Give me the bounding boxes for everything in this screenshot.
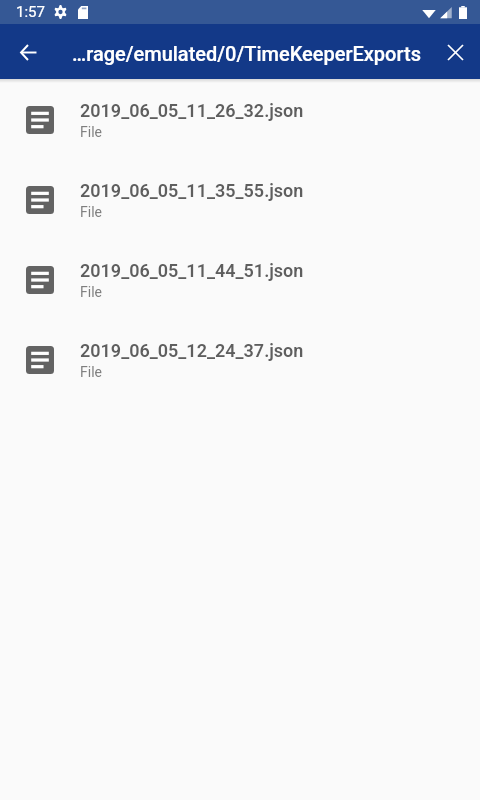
- staticText: File: [80, 284, 102, 300]
- staticText: 2019_06_05_11_35_55.json: [80, 180, 304, 201]
- button[interactable]: Navigate up: [4, 28, 52, 76]
- button[interactable]: Close: [431, 28, 479, 76]
- button[interactable]: 2019_06_05_11_44_51.json: [0, 239, 480, 319]
- staticText: File: [80, 124, 102, 140]
- staticText: 2019_06_05_11_44_51.json: [80, 260, 304, 281]
- staticText: 2019_06_05_12_24_37.json: [80, 340, 304, 361]
- staticText: 2019_06_05_11_26_32.json: [80, 100, 304, 121]
- staticText: 1:57: [16, 3, 45, 21]
- button[interactable]: 2019_06_05_12_24_37.json: [0, 319, 480, 399]
- button[interactable]: 2019_06_05_11_35_55.json: [0, 159, 480, 239]
- staticText: File: [80, 204, 102, 220]
- button[interactable]: 2019_06_05_11_26_32.json: [0, 79, 480, 159]
- staticText: …rage/emulated/0/TimeKeeperExports: [72, 42, 421, 65]
- staticText: File: [80, 364, 102, 380]
